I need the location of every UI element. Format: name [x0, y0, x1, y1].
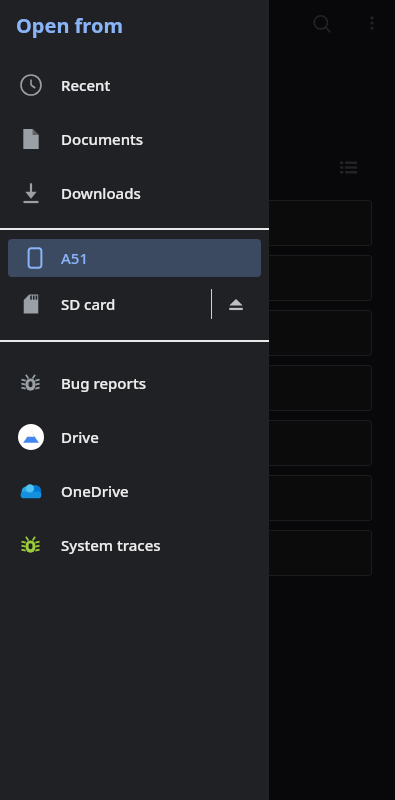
staticText: A51 — [61, 248, 88, 268]
staticText: SD card — [61, 294, 116, 314]
staticText: OneDrive — [61, 481, 129, 501]
button[interactable]: DCIM — [150, 255, 372, 301]
button[interactable]: OneDrive — [0, 464, 269, 518]
button[interactable]: Ringtones — [150, 530, 372, 576]
staticText: Open from — [16, 12, 123, 39]
button[interactable]: Search — [306, 8, 338, 40]
button[interactable]: Podcasts — [150, 475, 372, 521]
staticText: DCIM — [164, 268, 204, 288]
staticText: Downloads — [61, 183, 141, 203]
button[interactable]: A51 — [8, 239, 261, 277]
button[interactable]: Download — [150, 310, 372, 356]
button[interactable]: Drive — [0, 410, 269, 464]
button[interactable]: Recent — [0, 58, 269, 112]
button[interactable]: Pictures — [150, 420, 372, 466]
button[interactable]: Documents — [0, 112, 269, 166]
staticText: Bug reports — [61, 373, 146, 393]
button[interactable]: SD card — [0, 277, 269, 331]
staticText: System traces — [61, 535, 161, 555]
staticText: Recent — [61, 75, 111, 95]
button[interactable]: Eject SD card — [219, 287, 253, 321]
button[interactable]: System traces — [0, 518, 269, 572]
staticText: Documents — [61, 129, 144, 149]
button[interactable]: More options — [357, 8, 387, 38]
button[interactable]: Music — [150, 365, 372, 411]
button[interactable]: Downloads — [0, 166, 269, 220]
button[interactable]: Bug reports — [0, 356, 269, 410]
staticText: Download — [164, 323, 236, 343]
staticText: Android — [164, 213, 221, 233]
button[interactable]: List view — [333, 152, 363, 182]
button[interactable]: Android — [150, 200, 372, 246]
staticText: Drive — [61, 427, 99, 447]
